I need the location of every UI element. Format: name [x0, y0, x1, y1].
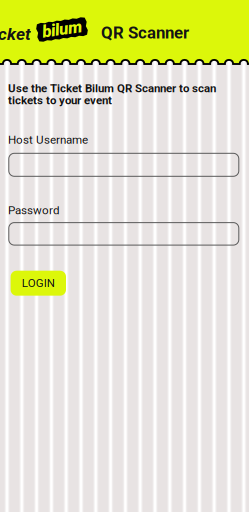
staticText: Use the Ticket Bilum QR Scanner to scan: [8, 81, 216, 95]
staticText: Password: [8, 204, 60, 217]
staticText: ticket: [0, 24, 31, 44]
staticText: LOGIN: [22, 276, 55, 290]
button[interactable]: LOGIN: [11, 271, 66, 296]
staticText: bilum: [42, 20, 82, 39]
staticText: QR Scanner: [101, 23, 189, 43]
staticText: Host Username: [8, 133, 88, 147]
staticText: tickets to your event: [8, 93, 112, 107]
